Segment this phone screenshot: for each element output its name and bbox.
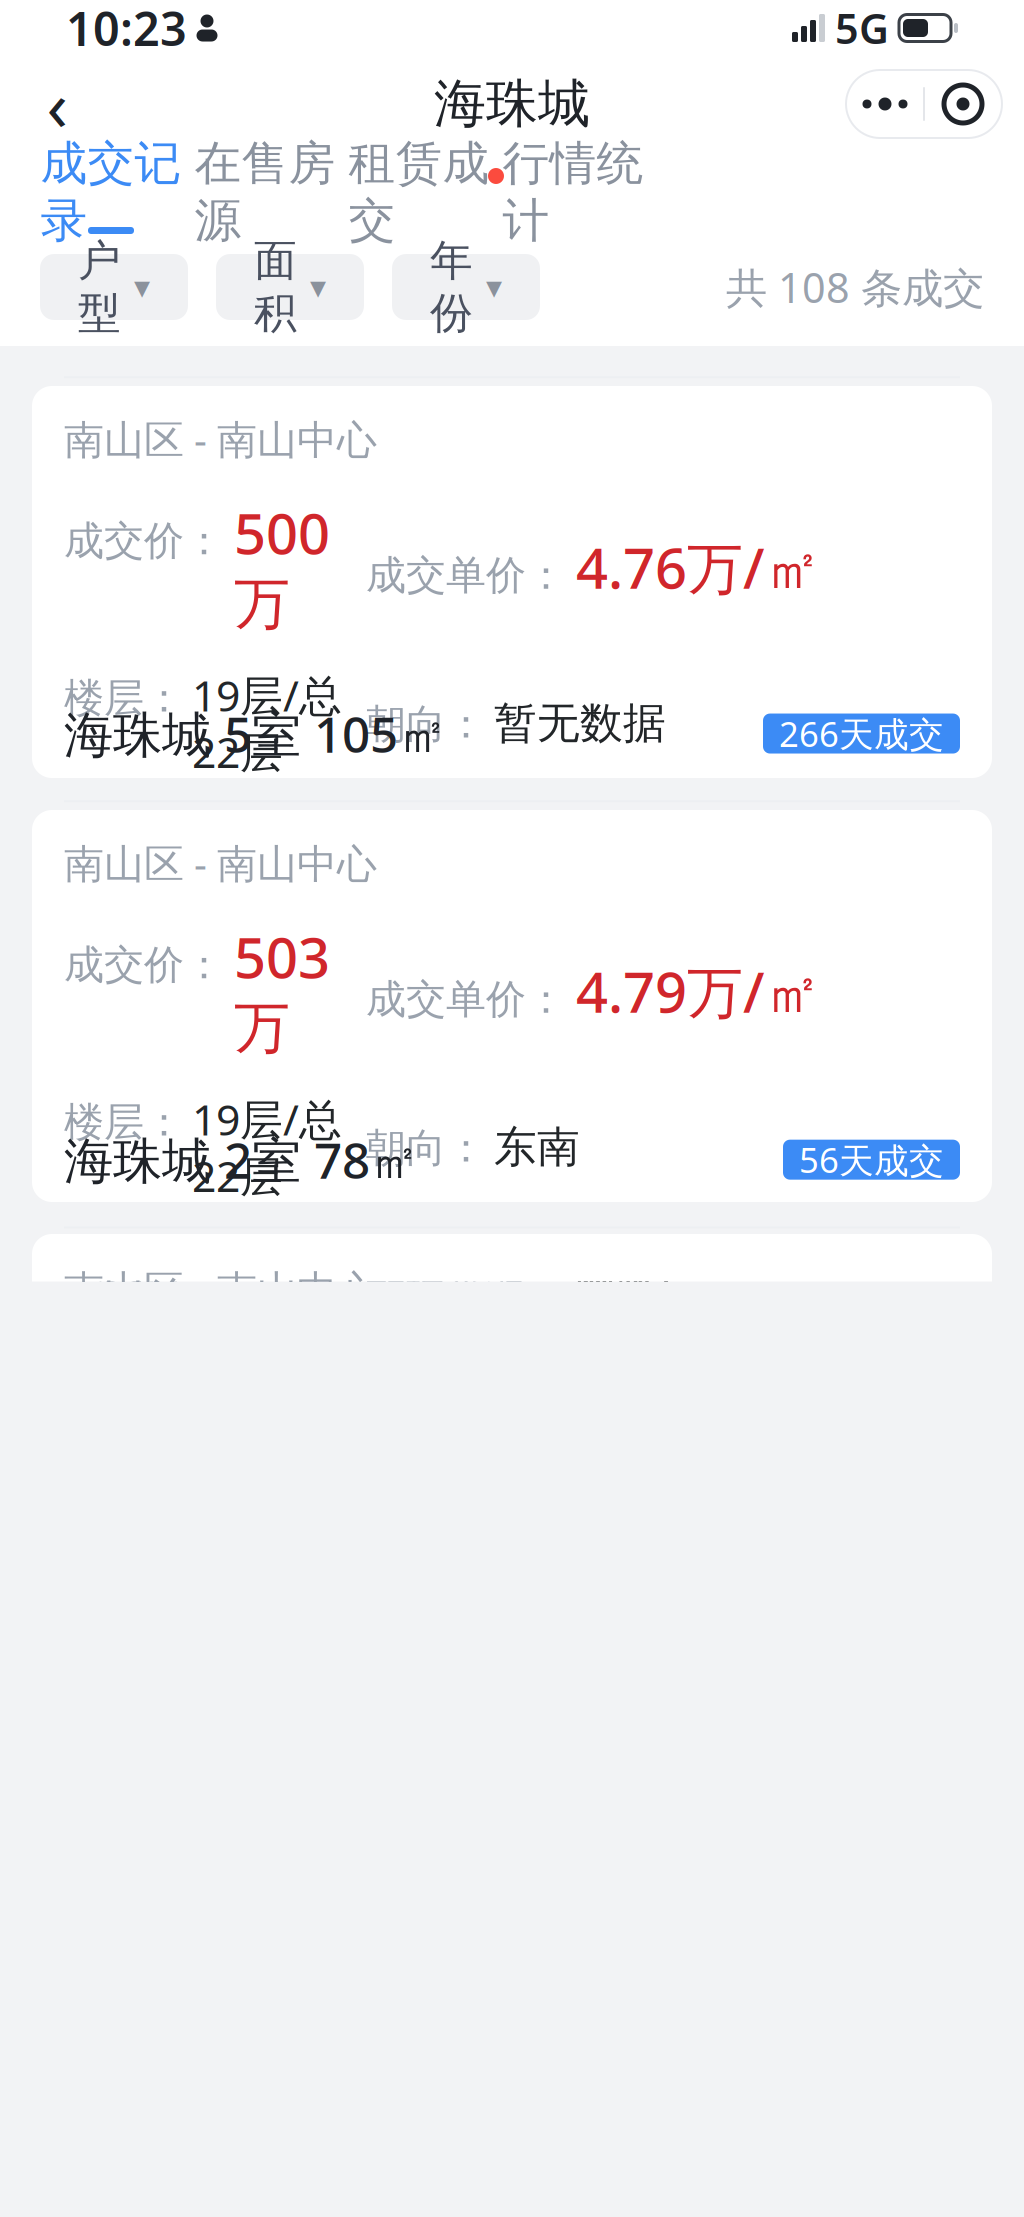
staticText: 503万 [234, 919, 330, 1062]
staticText: 楼层： [64, 1098, 184, 1147]
staticText: 4.76万/㎡ [576, 530, 821, 604]
staticText: 南山区 - 南山中心 [64, 412, 377, 465]
button[interactable]: 海珠城 2室 78㎡ [32, 1234, 992, 1626]
staticText: 成交单价： [366, 975, 566, 1024]
staticText: ▾ [310, 269, 326, 305]
staticText: 2025-11-20 [192, 1232, 364, 1345]
staticText: 成交日期： [64, 1239, 184, 1337]
staticText: 数据来源： [366, 843, 566, 892]
button[interactable]: 面积 [216, 254, 364, 320]
staticText: 成交单价： [366, 551, 566, 600]
staticText: 19层/总22层 [192, 667, 342, 780]
staticText: 4.79万/㎡ [576, 954, 821, 1028]
button[interactable]: 在售房源 [188, 152, 342, 250]
staticText: ▾ [134, 269, 150, 305]
staticText: 5G [835, 1, 889, 55]
staticText: 272天成交 [779, 286, 944, 332]
staticText: 成交价： [64, 940, 224, 989]
staticText: 海珠城 5室 105㎡ [64, 701, 447, 766]
staticText: 成交记录 [40, 135, 181, 249]
staticText: 在售房源 [194, 135, 335, 249]
staticText: 朝向： [366, 1124, 486, 1173]
staticText: 南山区 - 南山中心 [64, 836, 377, 889]
staticText: 10:23 [66, 0, 187, 59]
staticText: 年份 [430, 235, 473, 339]
staticText: 暂无数据 [494, 697, 666, 749]
button[interactable]: 年份 [392, 254, 540, 320]
button[interactable]: 海珠城 3室 105㎡ [32, 386, 992, 778]
staticText: 租赁成交 [348, 135, 489, 249]
staticText: 56天成交 [799, 1137, 944, 1183]
button[interactable]: 户型 [40, 254, 188, 320]
staticText: 海珠城 [434, 72, 590, 136]
staticText: 数据来源： [366, 1267, 566, 1316]
staticText: 2026-03-19 [192, 808, 364, 921]
staticText: 海珠城 2室 78㎡ [64, 1127, 419, 1192]
staticText: 东南 [494, 1121, 580, 1173]
staticText: 成交价： [64, 516, 224, 565]
button[interactable]: 海珠城 5室 105㎡ [32, 810, 992, 1202]
button[interactable]: More options [846, 70, 1002, 138]
staticText: 共 108 条成交 [726, 260, 984, 314]
staticText: 朝向： [366, 700, 486, 749]
staticText: ‹ [46, 58, 67, 150]
staticText: 南山区 - 南山中心 [64, 1262, 377, 1315]
staticText: 19层/总22层 [192, 1091, 342, 1204]
staticText: 500万 [234, 495, 330, 638]
staticText: 成交日期： [64, 815, 184, 913]
staticText: 266天成交 [779, 710, 944, 756]
staticText: 行情统计 [502, 135, 643, 249]
button[interactable]: Back [22, 69, 92, 139]
staticText: 楼层： [64, 674, 184, 723]
staticText: ▾ [486, 269, 502, 305]
staticText: 网络L [574, 1260, 682, 1317]
staticText: 海珠城 3室 105㎡ [64, 277, 447, 342]
button[interactable]: 行情统计 [496, 152, 650, 250]
staticText: 户型 [78, 235, 121, 339]
button[interactable]: 租赁成交 [342, 152, 496, 250]
button[interactable]: 成交记录 [34, 152, 188, 250]
staticText: 面积 [254, 235, 297, 339]
